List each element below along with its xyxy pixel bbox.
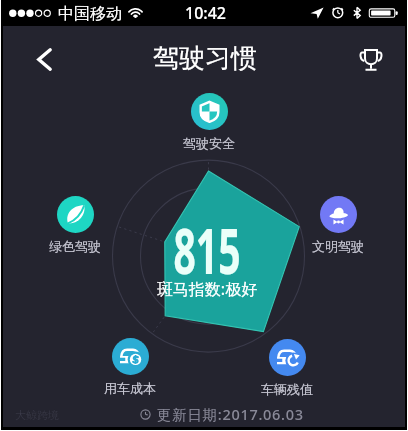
staticText: 文明驾驶 xyxy=(312,238,364,254)
staticText: 815 xyxy=(80,208,334,292)
button[interactable]: 车辆残值 xyxy=(243,339,331,397)
button[interactable]: Back xyxy=(22,37,66,81)
staticText: 车辆残值 xyxy=(261,381,313,397)
staticText: 10:42 xyxy=(185,2,226,24)
button[interactable]: 用车成本 xyxy=(86,338,174,396)
staticText: 斑马指数:极好 xyxy=(6,278,408,300)
staticText: 用车成本 xyxy=(104,380,156,396)
staticText: 驾驶习惯 xyxy=(153,42,257,75)
staticText: 大鲸跨境 xyxy=(15,408,59,422)
staticText: 绿色驾驶 xyxy=(49,238,101,254)
button[interactable]: 驾驶安全 xyxy=(165,93,253,151)
button[interactable]: Leaderboard xyxy=(350,38,392,80)
staticText: 驾驶安全 xyxy=(183,135,235,151)
button[interactable]: 文明驾驶 xyxy=(294,196,382,254)
staticText: 中国移动 xyxy=(58,4,122,24)
staticText: 更新日期:2017.06.03 xyxy=(157,404,304,424)
button[interactable]: 绿色驾驶 xyxy=(31,196,119,254)
